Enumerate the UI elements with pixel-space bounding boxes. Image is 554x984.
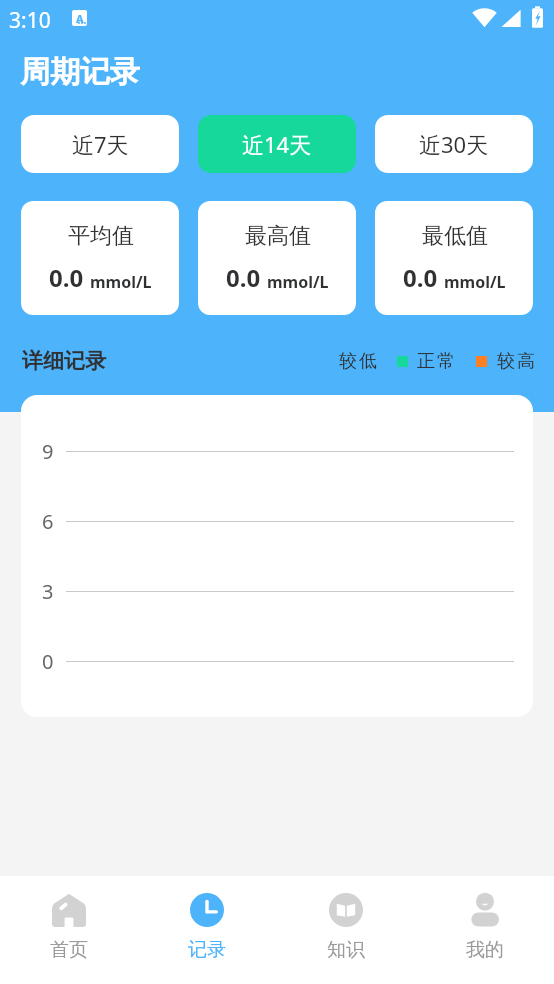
staticText: 详细记录 xyxy=(22,348,106,374)
staticText: 6 xyxy=(42,508,54,535)
staticText: 我的 xyxy=(466,938,504,962)
staticText: 最高值 xyxy=(245,222,311,250)
staticText: 正常 xyxy=(416,350,456,373)
staticText: 9 xyxy=(42,438,54,465)
staticText: A xyxy=(76,11,84,26)
staticText: 周期记录 xyxy=(20,53,140,91)
staticText: 0 xyxy=(42,648,54,675)
staticText: 近30天 xyxy=(419,129,489,159)
staticText: 0.0 xyxy=(49,261,84,294)
button[interactable]: 近14天 xyxy=(198,115,356,173)
staticText: 近14天 xyxy=(242,129,312,159)
staticText: 较高 xyxy=(496,350,536,373)
staticText: 记录 xyxy=(188,938,226,962)
button[interactable]: 首页 xyxy=(0,876,138,984)
staticText: 3 xyxy=(42,578,54,605)
staticText: 较低 xyxy=(338,350,378,373)
staticText: mmol/L xyxy=(267,271,329,293)
staticText: 0.0 xyxy=(226,261,261,294)
staticText: 近7天 xyxy=(72,129,129,159)
button[interactable]: 记录 xyxy=(138,876,276,984)
staticText: 最低值 xyxy=(422,222,488,250)
button[interactable]: 知识 xyxy=(276,876,415,984)
button[interactable]: 近7天 xyxy=(21,115,179,173)
button[interactable]: 最低值 xyxy=(375,201,533,315)
button[interactable]: 平均值 xyxy=(21,201,179,315)
button[interactable]: 近30天 xyxy=(375,115,533,173)
staticText: 首页 xyxy=(50,938,88,962)
staticText: 知识 xyxy=(327,938,365,962)
staticText: 平均值 xyxy=(68,222,134,250)
staticText: mmol/L xyxy=(90,271,152,293)
staticText: 0.0 xyxy=(403,261,438,294)
staticText: 3:10 xyxy=(9,6,51,35)
button[interactable]: 最高值 xyxy=(198,201,356,315)
button[interactable]: 我的 xyxy=(415,876,554,984)
staticText: mmol/L xyxy=(444,271,506,293)
